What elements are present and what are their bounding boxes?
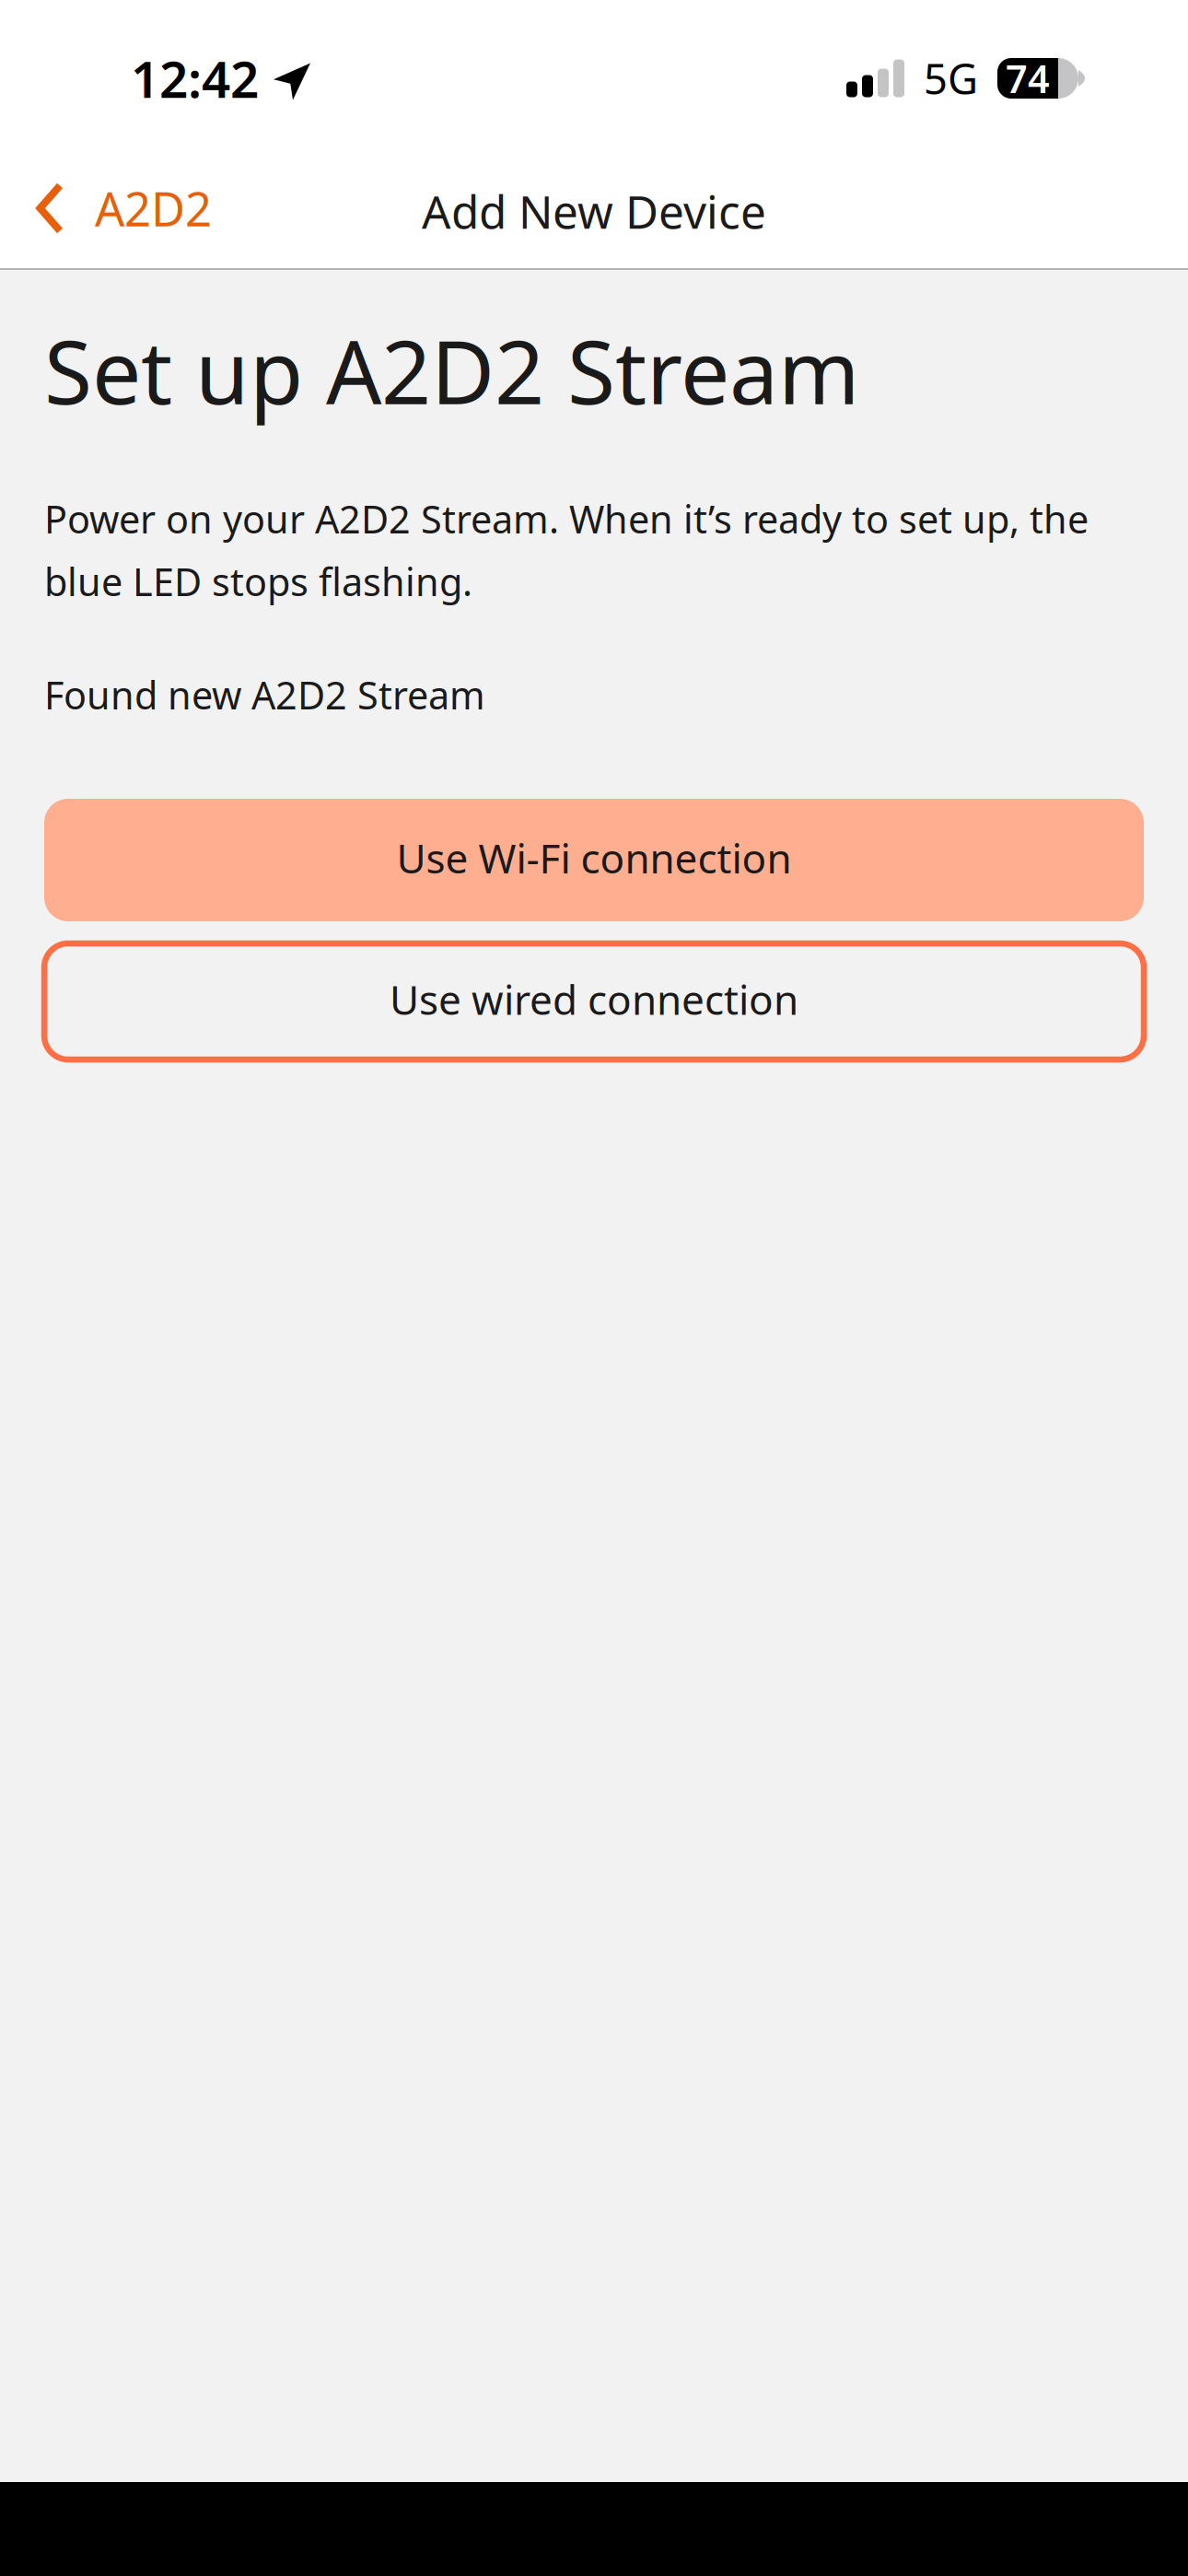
staticText: Use wired connection — [390, 972, 798, 1026]
button[interactable]: Use wired connection — [44, 943, 1144, 1060]
button[interactable]: A2D2 — [0, 177, 234, 249]
staticText: blue LED stops flashing. — [44, 556, 472, 607]
staticText: 5G — [924, 51, 978, 106]
staticText: Found new A2D2 Stream — [44, 669, 485, 720]
staticText: Use Wi-Fi connection — [396, 831, 792, 885]
staticText: Add New Device — [422, 181, 766, 241]
staticText: A2D2 — [95, 177, 212, 239]
staticText: 12:42 — [131, 45, 259, 112]
staticText: Set up A2D2 Stream — [44, 313, 860, 428]
staticText: Power on your A2D2 Stream. When it’s rea… — [44, 493, 1089, 544]
button[interactable]: Use Wi-Fi connection — [44, 799, 1144, 921]
staticText: 74 — [1006, 53, 1050, 104]
